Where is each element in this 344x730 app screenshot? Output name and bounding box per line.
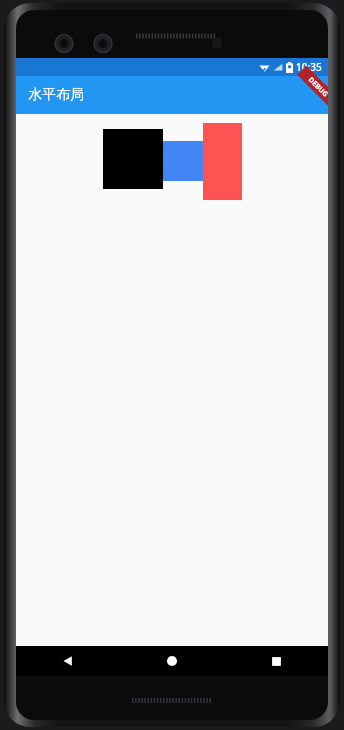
staticText: DEBUG: [306, 75, 328, 99]
staticText: 10:35: [296, 60, 322, 74]
button[interactable]: 水平布局: [16, 76, 328, 114]
staticText: 水平布局: [28, 86, 84, 104]
button[interactable]: Recent apps: [224, 646, 328, 676]
button[interactable]: Back: [16, 646, 120, 676]
button[interactable]: Home: [120, 646, 224, 676]
